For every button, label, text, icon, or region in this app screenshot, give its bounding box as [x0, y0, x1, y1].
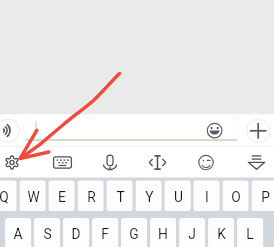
button[interactable]: Change keyboard	[43, 147, 79, 177]
button[interactable]: Settings	[0, 147, 30, 177]
button[interactable]: H	[150, 218, 176, 247]
staticText: D	[71, 226, 81, 242]
staticText: S	[43, 226, 52, 242]
staticText: A	[13, 226, 23, 242]
staticText: H	[158, 226, 168, 242]
button[interactable]: Hide keyboard	[239, 147, 274, 177]
staticText: L	[246, 226, 254, 242]
button[interactable]: G	[121, 218, 147, 247]
button[interactable]: A	[5, 218, 31, 247]
button[interactable]: O	[223, 181, 249, 212]
button[interactable]: Text editing	[141, 147, 177, 177]
staticText: U	[174, 189, 183, 205]
button[interactable]: Voice message	[0, 118, 20, 142]
button[interactable]: J	[179, 218, 205, 247]
staticText: F	[101, 226, 109, 242]
button[interactable]: I	[194, 181, 220, 212]
staticText: R	[87, 189, 96, 205]
button[interactable]: Insert emoji	[207, 121, 226, 140]
button[interactable]: Add attachment	[246, 119, 269, 142]
button[interactable]: D	[63, 218, 89, 247]
staticText: P	[261, 189, 270, 205]
button[interactable]: L	[237, 218, 263, 247]
staticText: I	[205, 189, 209, 205]
button[interactable]: F	[92, 218, 118, 247]
staticText: K	[217, 226, 226, 242]
staticText: O	[231, 189, 241, 205]
staticText: T	[116, 189, 125, 205]
button[interactable]: W	[20, 181, 46, 212]
staticText: G	[129, 226, 139, 242]
button[interactable]: E	[49, 181, 75, 212]
button[interactable]: U	[165, 181, 191, 212]
button[interactable]: Message input field	[24, 117, 207, 141]
button[interactable]: P	[252, 181, 274, 212]
staticText: Y	[145, 189, 154, 205]
staticText: W	[27, 189, 40, 205]
staticText: E	[58, 189, 66, 205]
button[interactable]: Emoji	[190, 147, 226, 177]
staticText: J	[188, 226, 196, 242]
button[interactable]: Q	[0, 181, 17, 212]
button[interactable]: K	[208, 218, 234, 247]
button[interactable]: T	[107, 181, 133, 212]
button[interactable]: S	[34, 218, 60, 247]
button[interactable]: R	[78, 181, 104, 212]
staticText: Q	[0, 189, 9, 205]
button[interactable]: Y	[136, 181, 162, 212]
button[interactable]: Voice input	[92, 147, 128, 177]
